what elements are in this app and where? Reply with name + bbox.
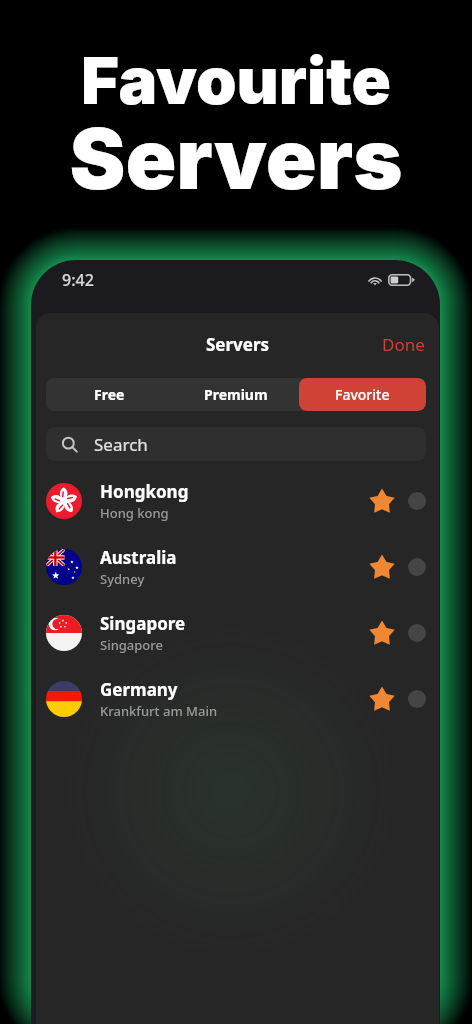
staticText: Servers bbox=[206, 333, 270, 356]
button[interactable]: Favourite bbox=[367, 552, 397, 582]
staticText: Favourite bbox=[81, 41, 391, 120]
button[interactable]: Free bbox=[46, 378, 172, 411]
button[interactable]: Premium bbox=[172, 378, 299, 411]
staticText: Premium bbox=[204, 385, 268, 404]
button[interactable]: Favorite bbox=[299, 378, 426, 411]
button[interactable]: Select server bbox=[408, 492, 426, 510]
button[interactable]: Favourite bbox=[367, 684, 397, 714]
staticText: Done bbox=[382, 333, 425, 356]
staticText: Australia bbox=[100, 546, 177, 569]
button[interactable]: Favourite bbox=[367, 618, 397, 648]
button[interactable]: Hongkong bbox=[36, 468, 439, 534]
staticText: Search bbox=[94, 433, 148, 456]
button[interactable]: Done bbox=[382, 333, 439, 356]
staticText: Hong kong bbox=[100, 504, 169, 522]
staticText: Favorite bbox=[335, 385, 390, 404]
button[interactable]: Select server bbox=[408, 558, 426, 576]
staticText: Singapore bbox=[100, 612, 186, 635]
button[interactable]: Singapore bbox=[36, 600, 439, 666]
staticText: Free bbox=[94, 385, 125, 404]
staticText: Krankfurt am Main bbox=[100, 702, 218, 720]
button[interactable]: Select server bbox=[408, 690, 426, 708]
staticText: Singapore bbox=[100, 636, 164, 654]
staticText: Sydney bbox=[100, 570, 145, 588]
staticText: Hongkong bbox=[100, 480, 189, 503]
button[interactable]: Select server bbox=[408, 624, 426, 642]
button[interactable]: Australia bbox=[36, 534, 439, 600]
button[interactable]: Search bbox=[46, 427, 426, 461]
button[interactable]: Germany bbox=[36, 666, 439, 732]
button[interactable]: Favourite bbox=[367, 486, 397, 516]
staticText: Servers bbox=[69, 108, 403, 210]
staticText: 9:42 bbox=[62, 269, 94, 291]
staticText: Germany bbox=[100, 678, 178, 701]
